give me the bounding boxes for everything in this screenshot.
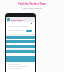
button[interactable] xyxy=(26,30,32,32)
staticText: book a class in seconds xyxy=(23,7,42,9)
staticText: Pilates Studio xyxy=(11,19,23,21)
staticText: Find the Perfect Time xyxy=(18,2,46,6)
button[interactable]: App icon xyxy=(7,17,34,22)
other: App icon xyxy=(7,18,10,21)
